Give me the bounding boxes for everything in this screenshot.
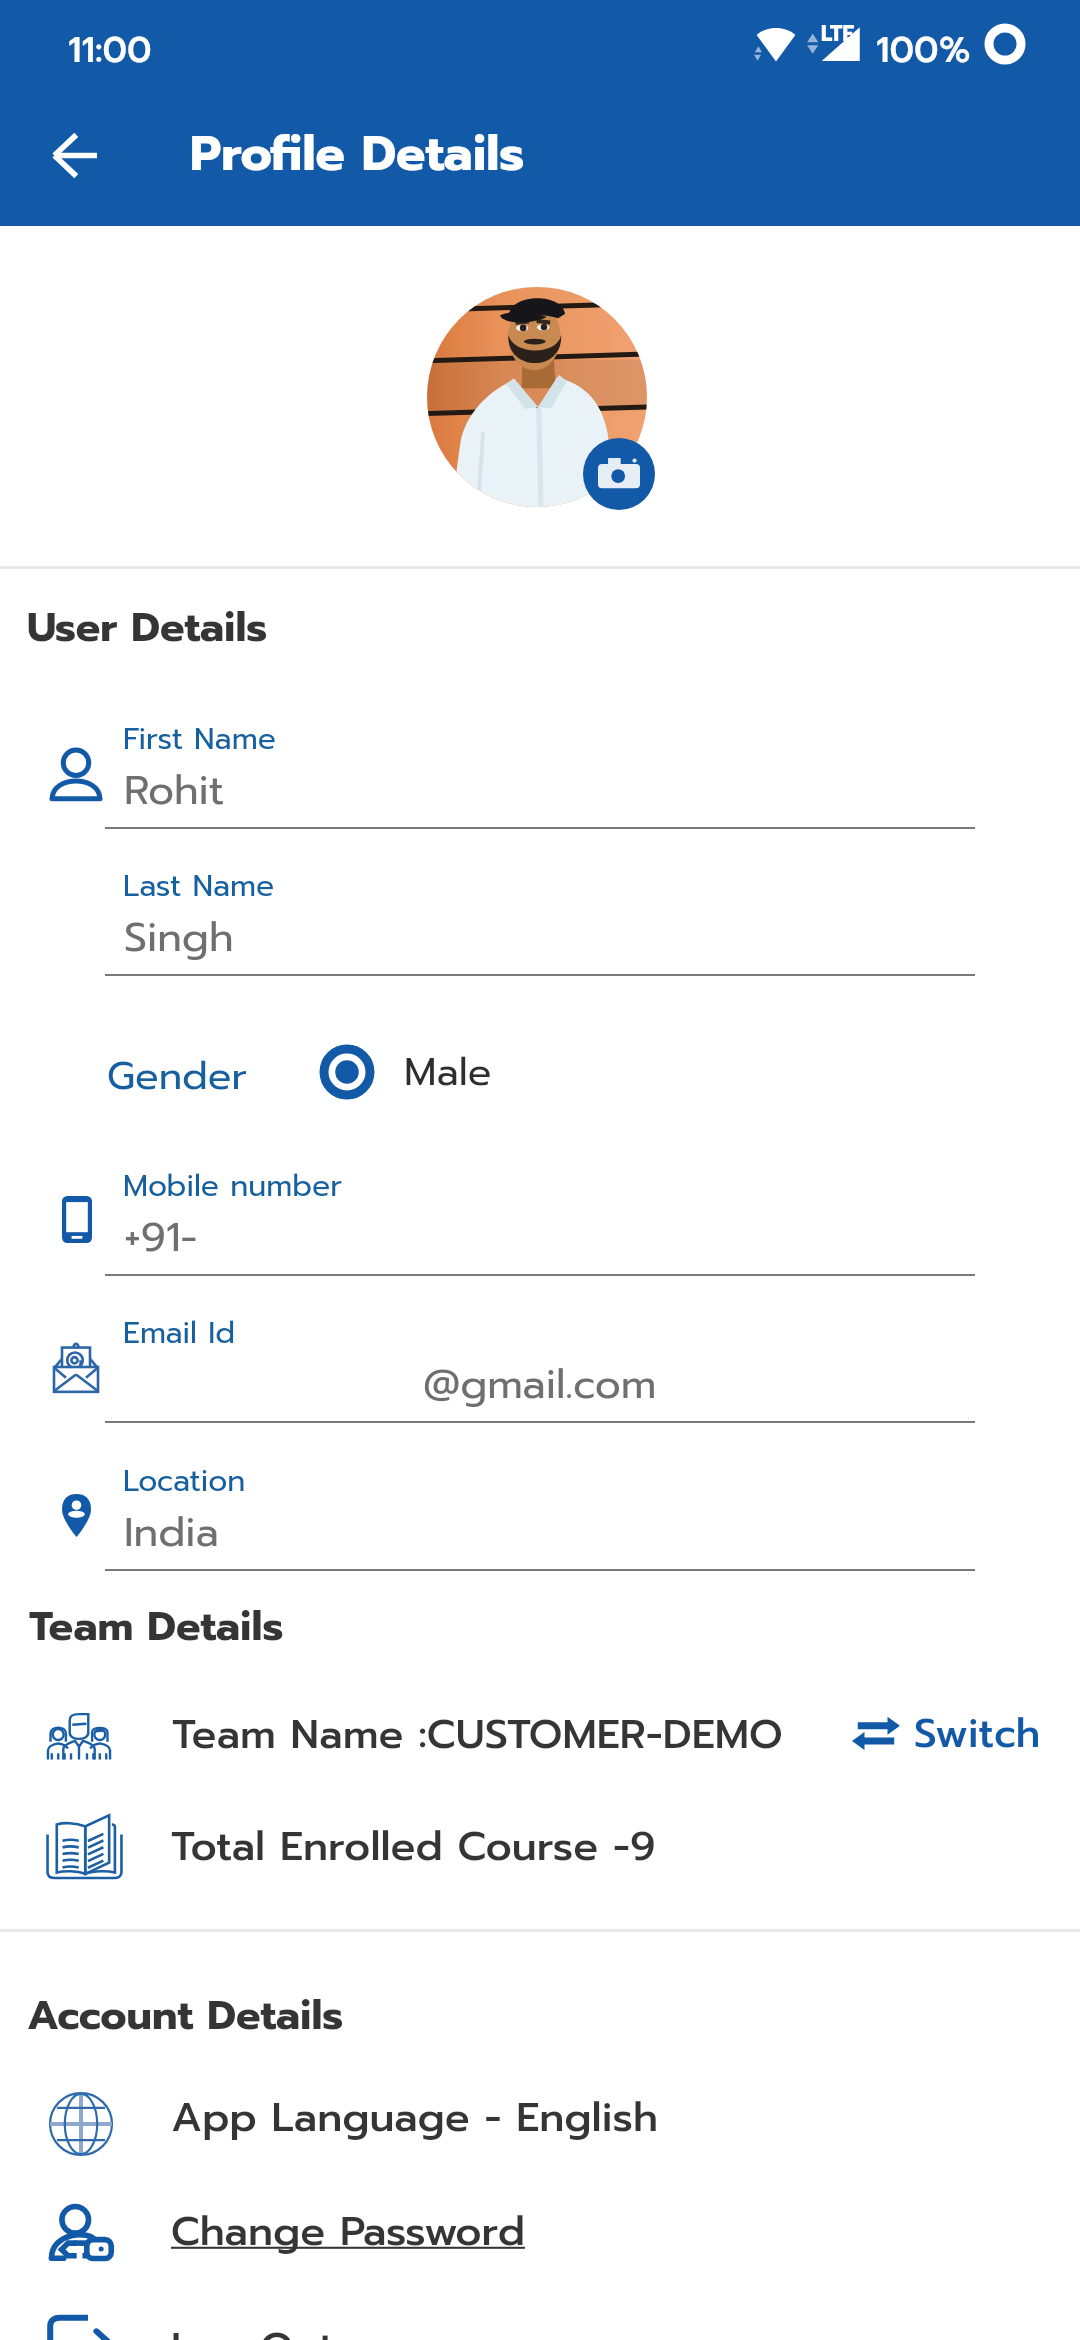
staticText: Rohit bbox=[124, 759, 225, 817]
staticText: Singh bbox=[124, 906, 234, 964]
staticText: App Language - English bbox=[171, 2086, 658, 2148]
staticText: Email Id bbox=[123, 1310, 235, 1355]
staticText: Last Name bbox=[123, 863, 275, 908]
staticText: India bbox=[124, 1501, 219, 1559]
staticText: +91- bbox=[124, 1206, 198, 1264]
staticText: Gender bbox=[107, 1046, 248, 1105]
staticText: Account Details bbox=[27, 1984, 344, 2046]
button[interactable]: Change Password bbox=[0, 2184, 1080, 2276]
button[interactable]: Team Name :CUSTOMER-DEMO bbox=[0, 1687, 1080, 1779]
button[interactable]: Log Out bbox=[0, 2300, 1080, 2340]
staticText: Team Details bbox=[29, 1595, 284, 1657]
staticText: Profile Details bbox=[190, 117, 525, 191]
button[interactable]: Change photo bbox=[583, 438, 655, 510]
staticText: Log Out bbox=[171, 2316, 335, 2340]
button[interactable]: Back bbox=[28, 108, 122, 202]
staticText: @gmail.com bbox=[423, 1353, 657, 1411]
staticText: First Name bbox=[123, 716, 276, 761]
staticText: Mobile number bbox=[123, 1163, 343, 1208]
staticText: Change Password bbox=[171, 2200, 525, 2262]
staticText: Location bbox=[123, 1458, 246, 1503]
staticText: Team Name :CUSTOMER-DEMO bbox=[172, 1703, 783, 1765]
button[interactable]: Switch bbox=[844, 1693, 1019, 1773]
button[interactable]: App Language - English bbox=[0, 2077, 1080, 2169]
staticText: 100% bbox=[876, 23, 971, 77]
staticText: Total Enrolled Course -9 bbox=[171, 1815, 656, 1877]
staticText: Switch bbox=[914, 1703, 1041, 1763]
staticText: LTE bbox=[821, 18, 855, 50]
button[interactable]: Male bbox=[319, 1042, 492, 1101]
button[interactable]: Total Enrolled Course -9 bbox=[0, 1799, 1080, 1891]
staticText: Male bbox=[404, 1042, 492, 1101]
button[interactable]: Profile photo bbox=[427, 287, 647, 507]
staticText: 11:00 bbox=[68, 23, 152, 77]
staticText: User Details bbox=[27, 596, 268, 658]
